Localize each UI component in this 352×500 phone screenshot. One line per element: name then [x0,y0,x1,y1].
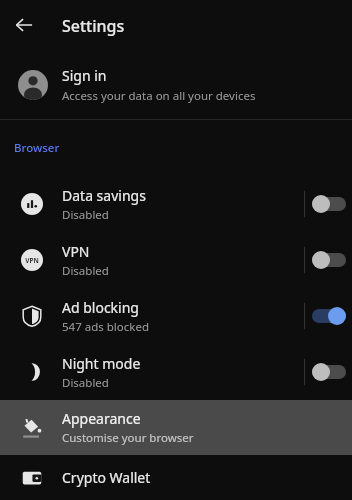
button[interactable]: Appearance [0,400,352,455]
button[interactable]: Toggle VPN [305,241,352,279]
staticText: 547 ads blocked [62,319,149,335]
staticText: Appearance [62,409,141,428]
staticText: Disabled [62,207,109,223]
button[interactable]: Back [8,9,40,41]
staticText: Customise your browser [62,430,194,446]
button[interactable]: Toggle Ad blocking [305,297,352,335]
button[interactable]: Toggle Night mode [305,353,352,391]
button[interactable]: Toggle Data savings [305,185,352,223]
staticText: Disabled [62,375,109,391]
staticText: Access your data on all your devices [62,88,256,104]
staticText: Night mode [62,354,141,373]
staticText: Ad blocking [62,298,139,317]
staticText: VPN [25,256,39,265]
staticText: Browser [14,140,60,156]
button[interactable]: Data savings [0,176,352,232]
button[interactable]: Crypto Wallet [0,455,352,500]
staticText: Data savings [62,186,146,205]
staticText: VPN [62,242,90,261]
button[interactable]: Sign in [0,50,352,119]
staticText: Crypto Wallet [62,468,151,487]
staticText: Disabled [62,263,109,279]
button[interactable]: Night mode [0,344,352,400]
button[interactable]: Ad blocking [0,288,352,344]
staticText: Settings [62,15,125,37]
button[interactable]: VPN [0,232,352,288]
staticText: Sign in [62,66,107,85]
